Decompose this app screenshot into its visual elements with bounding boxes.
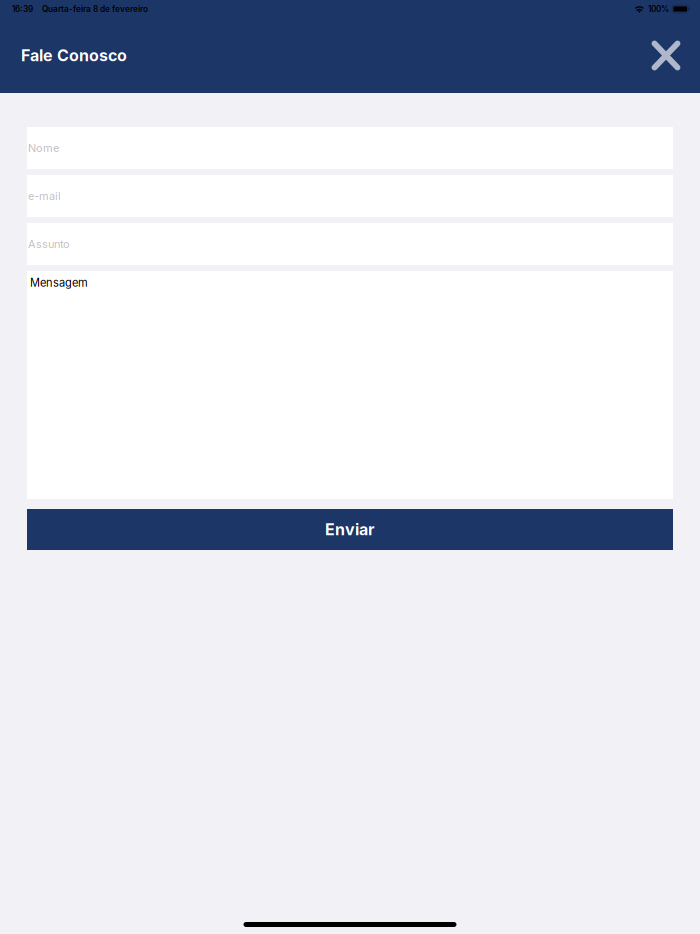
- button[interactable]: Assunto: [27, 223, 673, 265]
- button[interactable]: Fechar: [641, 31, 690, 79]
- staticText: 16:39: [12, 4, 33, 14]
- staticText: Assunto: [28, 237, 70, 251]
- staticText: Mensagem: [30, 276, 88, 289]
- staticText: Nome: [28, 141, 59, 155]
- button[interactable]: Enviar: [27, 509, 673, 550]
- staticText: Fale Conosco: [21, 46, 127, 65]
- staticText: 100%: [648, 4, 669, 14]
- staticText: e-mail: [28, 189, 61, 203]
- staticText: Enviar: [325, 520, 375, 539]
- button[interactable]: Mensagem: [27, 271, 673, 499]
- staticText: Quarta-feira 8 de fevereiro: [42, 4, 148, 14]
